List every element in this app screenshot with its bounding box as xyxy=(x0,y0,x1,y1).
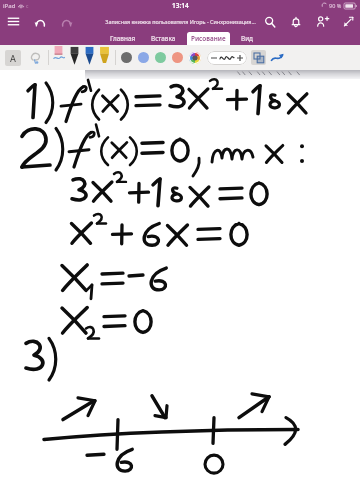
button[interactable]: Рисование xyxy=(187,32,230,45)
button[interactable]: Redo xyxy=(59,14,75,30)
button[interactable]: Pen xyxy=(98,46,111,69)
button[interactable]: Colour xyxy=(172,52,183,63)
staticText: Главная xyxy=(110,34,136,43)
staticText: Вид xyxy=(241,34,254,43)
button[interactable]: Search xyxy=(262,14,278,30)
button[interactable]: Pen, selected xyxy=(52,46,65,69)
staticText: Записная книжка пользователя Игорь - Син… xyxy=(105,18,256,25)
button[interactable]: Вид xyxy=(237,32,258,45)
button[interactable]: Lasso select xyxy=(27,49,44,66)
button[interactable]: Notifications xyxy=(288,14,304,30)
staticText: Вставка xyxy=(151,34,176,43)
button[interactable]: Colour xyxy=(138,52,149,63)
button[interactable]: Collapse ribbon xyxy=(340,14,356,30)
button[interactable]: More colours xyxy=(189,52,201,64)
button[interactable]: Вставка xyxy=(147,32,180,45)
staticText: 90 % xyxy=(329,2,342,9)
button[interactable]: Ink to shape xyxy=(269,49,286,66)
staticText: Рисование xyxy=(191,34,226,43)
button[interactable]: Pen xyxy=(68,46,81,69)
button[interactable]: Colour xyxy=(155,52,166,63)
button[interactable]: Thickness xyxy=(207,51,247,65)
button[interactable]: Pen xyxy=(83,46,96,69)
button[interactable]: Select text xyxy=(5,50,21,66)
button[interactable]: Share with people xyxy=(314,13,331,30)
staticText: A xyxy=(10,52,16,64)
button[interactable]: Colour xyxy=(121,52,132,63)
button[interactable]: Undo xyxy=(32,14,48,30)
button[interactable]: Menu xyxy=(5,13,22,30)
staticText: 13:14 xyxy=(172,1,189,10)
button[interactable]: Copy ink xyxy=(251,50,266,65)
button[interactable]: Главная xyxy=(106,32,140,45)
staticText: iPad xyxy=(3,2,16,10)
staticText: c xyxy=(26,3,29,10)
